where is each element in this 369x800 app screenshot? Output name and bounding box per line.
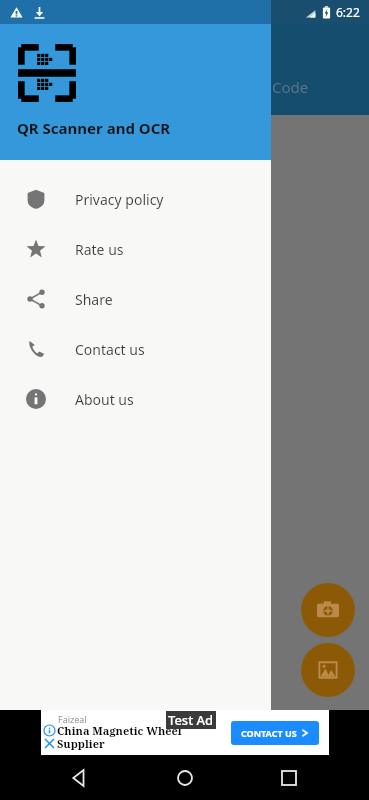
staticText: Code bbox=[272, 77, 309, 97]
staticText: Share bbox=[75, 290, 113, 309]
staticText: Supplier bbox=[57, 736, 105, 751]
staticText: Test Ad bbox=[168, 711, 214, 729]
button[interactable]: Pick from gallery bbox=[301, 643, 355, 697]
staticText: Contact us bbox=[75, 340, 145, 359]
staticText: About us bbox=[75, 390, 134, 409]
button[interactable]: Scan with camera bbox=[301, 583, 355, 637]
button[interactable]: Privacy policy bbox=[0, 174, 271, 224]
button[interactable]: Recent apps bbox=[265, 755, 313, 800]
staticText: CONTACT US bbox=[241, 727, 297, 739]
staticText: Faizeal bbox=[58, 713, 87, 725]
staticText: Rate us bbox=[75, 240, 124, 259]
button[interactable]: About us bbox=[0, 374, 271, 424]
staticText: Privacy policy bbox=[75, 190, 164, 209]
button[interactable]: Share bbox=[0, 274, 271, 324]
button[interactable]: Faizeal bbox=[41, 710, 329, 755]
button[interactable]: Home bbox=[161, 755, 209, 800]
button[interactable]: Rate us bbox=[0, 224, 271, 274]
button[interactable]: CONTACT US bbox=[231, 721, 319, 745]
staticText: QR Scanner and OCR bbox=[17, 118, 171, 138]
button[interactable]: Back bbox=[56, 755, 104, 800]
button[interactable]: Contact us bbox=[0, 324, 271, 374]
staticText: China Magnetic Wheel bbox=[57, 723, 182, 738]
staticText: 6:22 bbox=[336, 4, 360, 20]
